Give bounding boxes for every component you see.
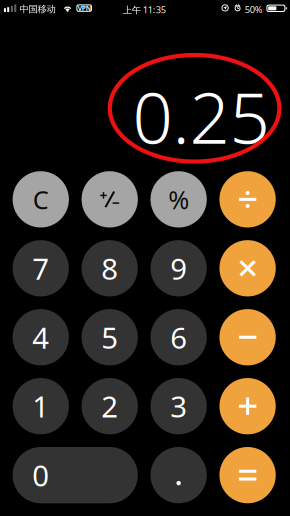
staticText: 3 xyxy=(170,387,187,426)
button[interactable]: 2 xyxy=(81,378,138,434)
staticText: 8 xyxy=(101,249,118,288)
button[interactable]: 6 xyxy=(150,309,207,365)
staticText: 7 xyxy=(32,249,49,288)
button[interactable]: 8 xyxy=(81,240,138,296)
button[interactable]: Divide xyxy=(219,171,276,227)
staticText: C xyxy=(33,182,49,216)
button[interactable]: Equals xyxy=(219,447,276,503)
staticText: 9 xyxy=(170,249,187,288)
staticText: 6 xyxy=(170,318,187,357)
button[interactable]: 3 xyxy=(150,378,207,434)
staticText: 4 xyxy=(32,318,49,357)
button[interactable]: Decimal point xyxy=(150,447,207,503)
staticText: 0 xyxy=(32,456,49,495)
staticText: 0.25 xyxy=(132,69,269,163)
staticText: 中国移动 xyxy=(19,3,55,15)
staticText: 5 xyxy=(101,318,118,357)
staticText: 2 xyxy=(101,387,118,426)
staticText: 1 xyxy=(32,387,49,426)
button[interactable]: 5 xyxy=(81,309,138,365)
staticText: 上午 11:35 xyxy=(123,3,166,16)
staticText: 50% xyxy=(245,3,263,16)
button[interactable]: 4 xyxy=(13,309,69,365)
button[interactable]: 0 xyxy=(13,447,138,503)
button[interactable]: Add xyxy=(219,378,276,434)
button[interactable]: Multiply xyxy=(219,240,276,296)
button[interactable]: % xyxy=(150,171,207,227)
button[interactable]: C xyxy=(13,171,69,227)
button[interactable]: 1 xyxy=(13,378,69,434)
button[interactable]: 7 xyxy=(13,240,69,296)
button[interactable]: 9 xyxy=(150,240,207,296)
staticText: VPN xyxy=(78,4,91,13)
button[interactable]: Subtract xyxy=(219,309,276,365)
staticText: % xyxy=(168,182,189,216)
button[interactable]: Toggle sign xyxy=(81,171,138,227)
